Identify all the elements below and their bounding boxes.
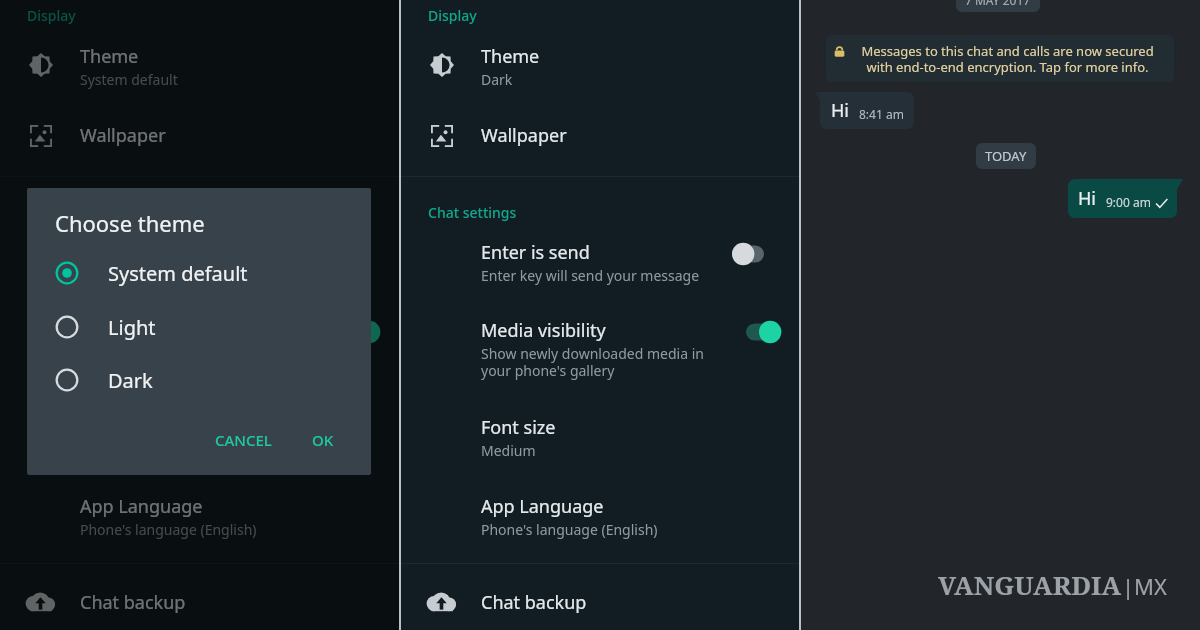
staticText: Media visibility	[481, 318, 606, 343]
button[interactable]: Theme	[0, 41, 399, 89]
button[interactable]: Chat backup	[0, 585, 399, 625]
staticText: Show newly downloaded media in your phon…	[481, 344, 704, 380]
staticText: Chat backup	[80, 590, 186, 615]
staticText: OK	[312, 430, 334, 450]
staticText: Medium	[481, 441, 536, 460]
staticText: Messages to this chat and calls are now …	[849, 42, 1166, 75]
button[interactable]: Dark	[27, 362, 371, 398]
staticText: App Language	[80, 494, 203, 519]
button[interactable]: App Language	[0, 492, 399, 538]
staticText: 7 MAY 2017	[965, 0, 1031, 8]
button[interactable]: Hi	[820, 92, 914, 129]
staticText: CANCEL	[215, 430, 272, 450]
button[interactable]: System default	[27, 255, 371, 291]
button[interactable]: Switch on	[341, 319, 381, 345]
staticText: Hi	[1078, 186, 1096, 211]
button[interactable]: Enter is send	[401, 238, 799, 284]
staticText: |MX	[1122, 571, 1167, 601]
staticText: Chat settings	[428, 203, 517, 222]
staticText: Wallpaper	[481, 123, 567, 148]
staticText: Choose theme	[55, 208, 205, 238]
staticText: Font size	[481, 415, 556, 440]
staticText: Enter key will send your message	[481, 266, 700, 285]
staticText: Show newly downloaded media in your phon…	[80, 344, 303, 380]
staticText: TODAY	[985, 147, 1027, 165]
button[interactable]: TODAY	[976, 143, 1036, 169]
staticText: System default	[108, 260, 248, 287]
staticText: Hi	[831, 98, 849, 123]
staticText: App Language	[481, 494, 604, 519]
staticText: Display	[428, 6, 477, 25]
button[interactable]: Wallpaper	[401, 118, 799, 154]
button[interactable]: Light	[27, 309, 371, 345]
button[interactable]: Chat backup	[401, 585, 799, 625]
button[interactable]: Theme	[401, 41, 799, 89]
staticText: Enter is send	[481, 240, 590, 265]
button[interactable]: OK	[300, 422, 346, 458]
staticText: Phone's language (English)	[481, 520, 658, 539]
staticText: 8:41 am	[859, 106, 904, 122]
button[interactable]: Media visibility	[0, 316, 399, 380]
button[interactable]: Enter is send	[0, 238, 399, 284]
button[interactable]: Switch off	[732, 241, 772, 267]
staticText: System default	[80, 70, 178, 89]
button[interactable]: Wallpaper	[0, 118, 399, 154]
staticText: Media visibility	[80, 318, 205, 343]
staticText: Theme	[481, 44, 540, 69]
button[interactable]: Hi	[1068, 179, 1177, 218]
button[interactable]: Media visibility	[401, 316, 799, 380]
staticText: Theme	[80, 44, 139, 69]
staticText: Dark	[108, 367, 153, 394]
button[interactable]: Switch on	[742, 319, 782, 345]
button[interactable]: Font size	[401, 413, 799, 459]
staticText: Chat settings	[27, 203, 116, 222]
button[interactable]: CANCEL	[203, 422, 284, 458]
button[interactable]: Messages to this chat and calls are now …	[826, 35, 1174, 82]
staticText: Phone's language (English)	[80, 520, 257, 539]
staticText: Chat backup	[481, 590, 587, 615]
button[interactable]: 7 MAY 2017	[965, 0, 1031, 8]
staticText: Light	[108, 314, 156, 341]
staticText: Display	[27, 6, 76, 25]
button[interactable]: App Language	[401, 492, 799, 538]
staticText: VANGUARDIA	[938, 567, 1122, 602]
staticText: Enter key will send your message	[80, 266, 299, 285]
button[interactable]: Font size	[0, 413, 399, 459]
staticText: Wallpaper	[80, 123, 166, 148]
staticText: Dark	[481, 70, 513, 89]
staticText: 9:00 am	[1106, 194, 1151, 210]
